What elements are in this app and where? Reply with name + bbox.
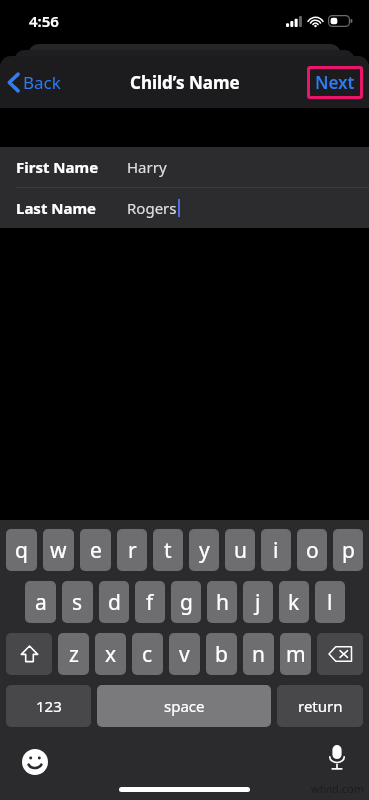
button[interactable]: space: [97, 685, 271, 727]
button[interactable]: r: [117, 529, 147, 571]
staticText: o: [306, 536, 319, 565]
staticText: Rogers: [127, 198, 177, 218]
button[interactable]: Dictation: [323, 740, 351, 775]
button[interactable]: q: [6, 529, 37, 571]
staticText: Child’s Name: [130, 71, 240, 94]
staticText: e: [90, 536, 102, 565]
staticText: 4:56: [29, 11, 59, 31]
button[interactable]: h: [207, 581, 237, 623]
button[interactable]: w: [43, 529, 74, 571]
button[interactable]: Shift: [6, 633, 52, 675]
button[interactable]: e: [80, 529, 111, 571]
button[interactable]: v: [169, 633, 200, 675]
button[interactable]: i: [261, 529, 291, 571]
staticText: n: [252, 640, 265, 669]
button[interactable]: f: [135, 581, 165, 623]
button[interactable]: o: [297, 529, 327, 571]
staticText: b: [215, 640, 228, 669]
button[interactable]: 123: [6, 685, 91, 727]
staticText: k: [288, 588, 300, 617]
staticText: w: [50, 536, 67, 565]
staticText: v: [179, 640, 190, 669]
staticText: m: [286, 640, 306, 669]
button[interactable]: j: [243, 581, 273, 623]
staticText: x: [105, 640, 117, 669]
button[interactable]: First Name: [0, 147, 369, 187]
staticText: t: [164, 536, 172, 565]
staticText: j: [255, 588, 261, 617]
staticText: Last Name: [16, 198, 97, 218]
button[interactable]: p: [333, 529, 363, 571]
button[interactable]: d: [99, 581, 129, 623]
staticText: q: [15, 536, 28, 565]
button[interactable]: return: [277, 685, 363, 727]
staticText: g: [180, 588, 193, 617]
staticText: return: [298, 696, 343, 716]
button[interactable]: k: [279, 581, 309, 623]
staticText: y: [199, 536, 210, 565]
button[interactable]: Next: [304, 63, 366, 102]
staticText: wtvid.com: [311, 781, 364, 796]
button[interactable]: n: [243, 633, 274, 675]
staticText: p: [342, 536, 355, 565]
button[interactable]: y: [189, 529, 219, 571]
button[interactable]: Backspace: [317, 633, 363, 675]
staticText: 123: [36, 696, 62, 716]
staticText: u: [234, 536, 247, 565]
button[interactable]: l: [315, 581, 345, 623]
staticText: r: [128, 536, 137, 565]
staticText: d: [108, 588, 121, 617]
button[interactable]: m: [280, 633, 311, 675]
staticText: Next: [315, 71, 355, 94]
button[interactable]: x: [95, 633, 126, 675]
button[interactable]: s: [62, 581, 93, 623]
staticText: s: [72, 588, 83, 617]
staticText: Back: [23, 71, 61, 94]
staticText: f: [146, 588, 154, 617]
button[interactable]: g: [171, 581, 201, 623]
staticText: z: [69, 640, 79, 669]
staticText: i: [273, 536, 279, 565]
button[interactable]: b: [206, 633, 237, 675]
button[interactable]: u: [225, 529, 255, 571]
button[interactable]: z: [58, 633, 89, 675]
staticText: First Name: [16, 157, 99, 177]
staticText: c: [142, 640, 153, 669]
staticText: l: [327, 588, 333, 617]
button[interactable]: Back: [0, 65, 71, 100]
staticText: a: [35, 588, 47, 617]
button[interactable]: Emoji: [18, 745, 52, 779]
staticText: space: [164, 696, 205, 716]
staticText: h: [216, 588, 229, 617]
staticText: Harry: [127, 157, 167, 177]
button[interactable]: t: [153, 529, 183, 571]
button[interactable]: c: [132, 633, 163, 675]
button[interactable]: Last Name: [0, 188, 369, 228]
button[interactable]: a: [25, 581, 56, 623]
